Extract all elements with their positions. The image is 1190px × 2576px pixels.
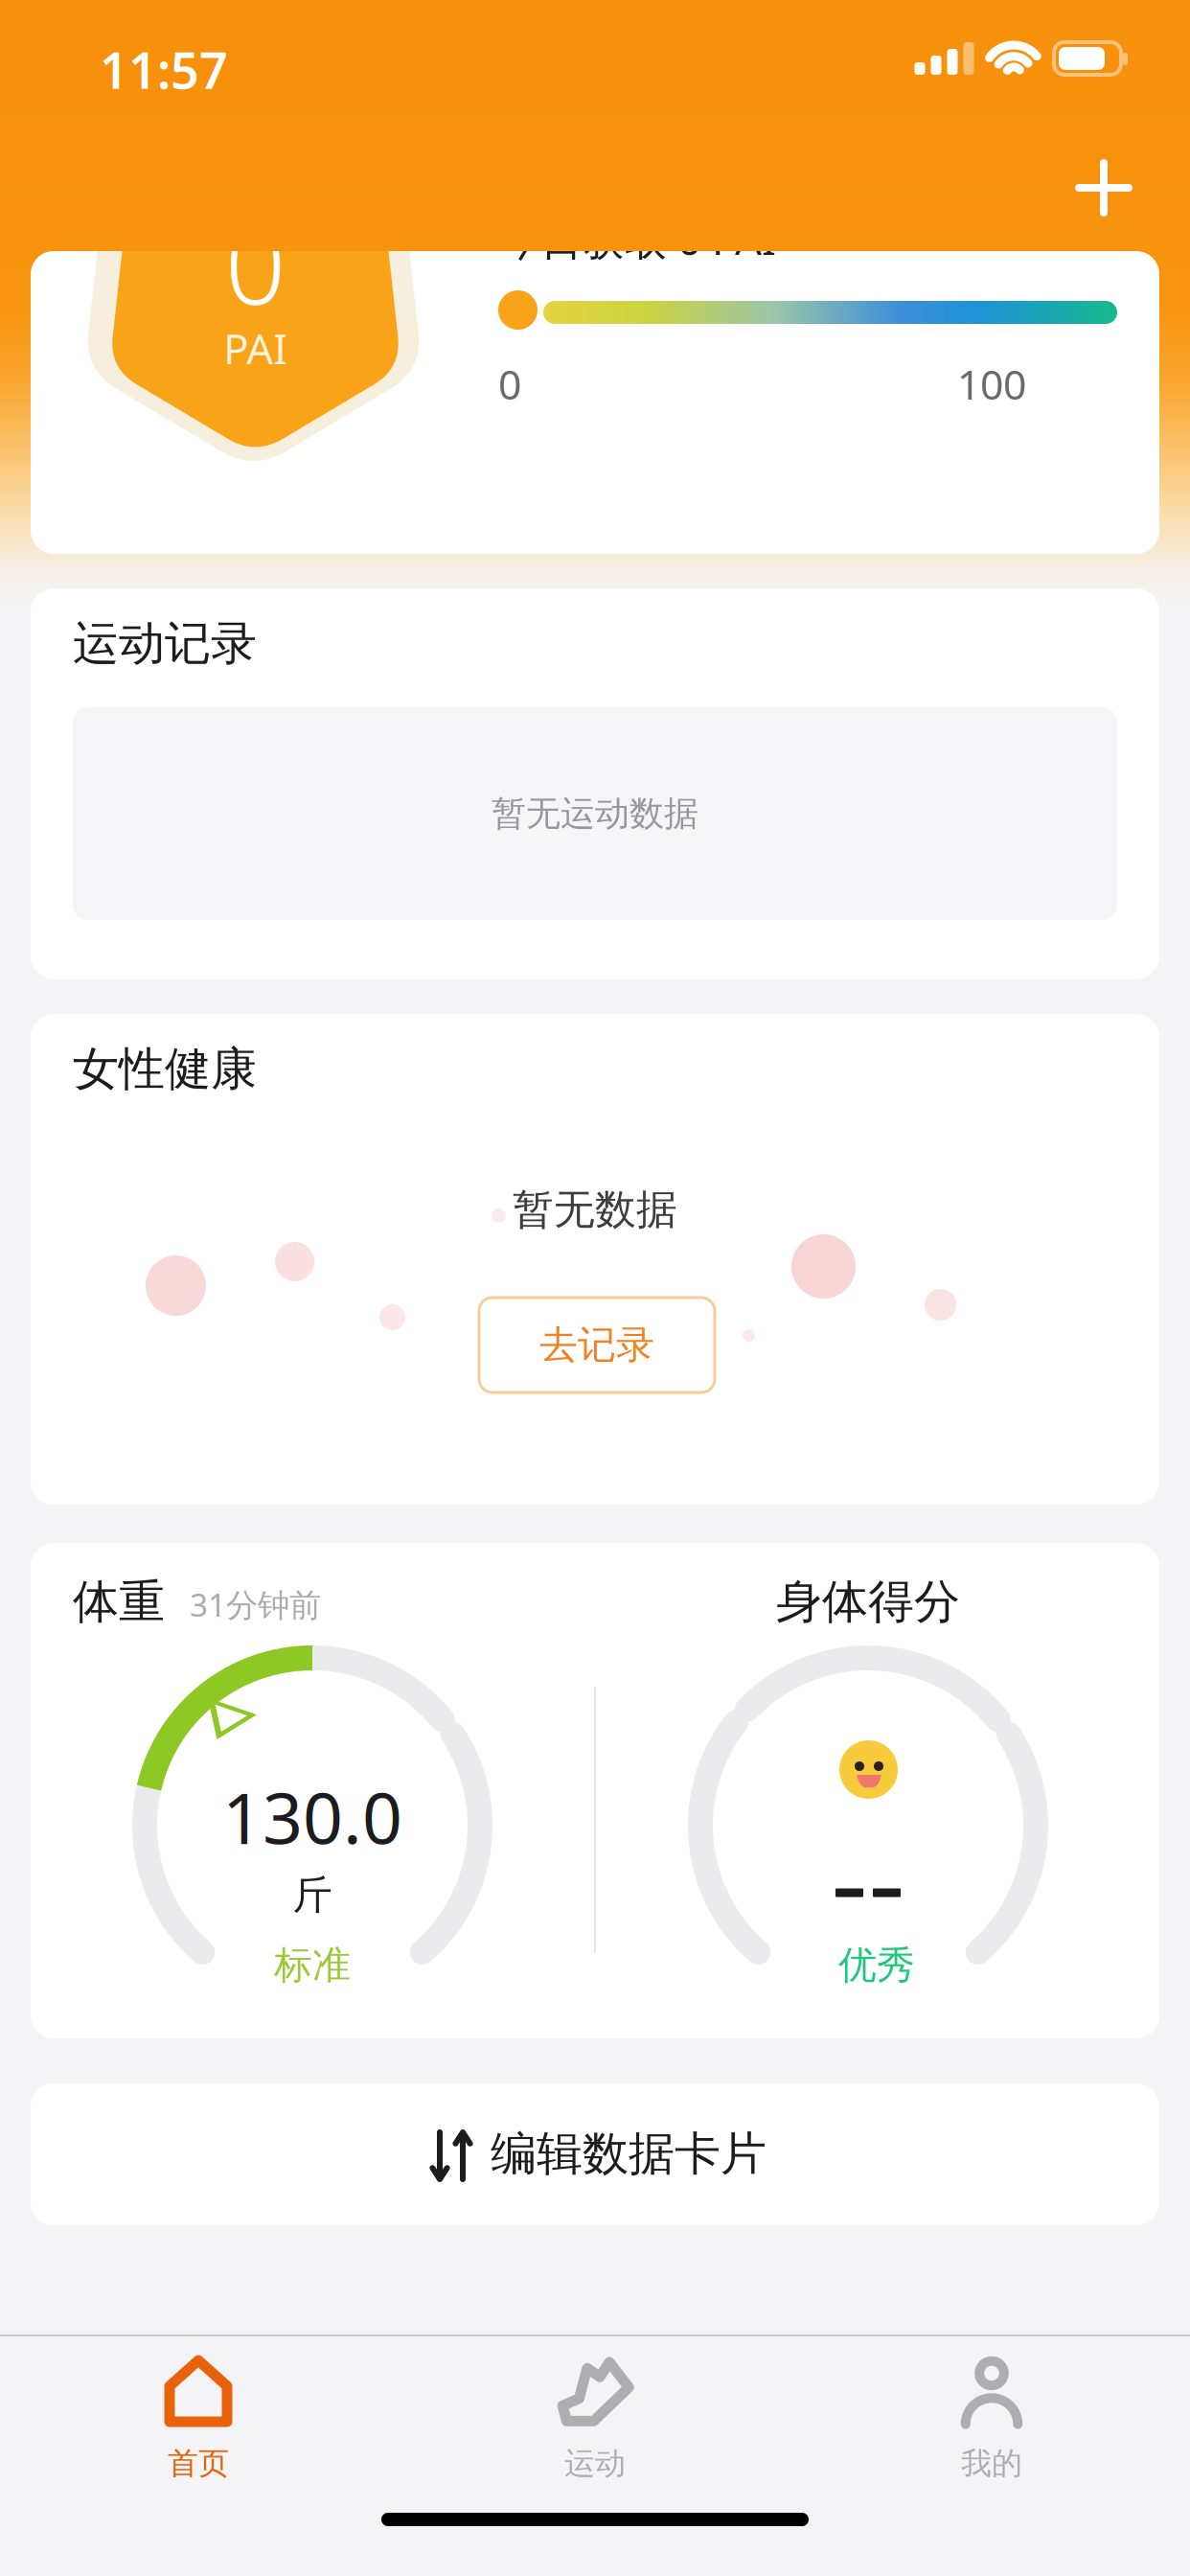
staticText: 身体得分 — [776, 1574, 960, 1630]
button[interactable]: 去记录 — [479, 1298, 715, 1392]
staticText: 100 — [957, 356, 1026, 411]
staticText: 体重 — [73, 1574, 165, 1630]
button[interactable]: 我的 — [793, 2356, 1190, 2518]
staticText: 我的 — [961, 2445, 1022, 2482]
staticText: 优秀 — [838, 1942, 915, 1989]
staticText: 暂无数据 — [513, 1184, 677, 1235]
staticText: PAI — [223, 320, 287, 376]
staticText: 0 — [498, 356, 521, 411]
staticText: 运动记录 — [73, 615, 257, 672]
staticText: 女性健康 — [73, 1041, 257, 1097]
button[interactable]: 编辑数据卡片 — [31, 2083, 1159, 2225]
staticText: 0 — [225, 192, 286, 334]
staticText: 运动 — [564, 2445, 626, 2482]
staticText: 31分钟前 — [190, 1583, 321, 1626]
button[interactable]: 运动 — [397, 2356, 793, 2518]
staticText: 暂无运动数据 — [492, 792, 698, 835]
staticText: 130.0 — [222, 1770, 402, 1863]
staticText: 斤 — [293, 1871, 332, 1919]
staticText: 标准 — [274, 1942, 351, 1989]
staticText: 去记录 — [539, 1321, 654, 1368]
staticText: 编辑数据卡片 — [491, 2126, 767, 2182]
staticText: 11:57 — [100, 36, 228, 103]
staticText: 首页 — [168, 2445, 229, 2482]
button[interactable]: 首页 — [0, 2356, 397, 2518]
staticText: 今日获取 0 PAI — [498, 211, 776, 267]
button[interactable]: Add — [1046, 130, 1161, 245]
